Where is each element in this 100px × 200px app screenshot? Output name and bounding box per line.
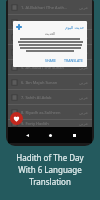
staticText: 1. Al-Bukhari (The Auth… [21,5,77,10]
staticText: عربي [79,110,89,115]
staticText: عربي [79,95,89,100]
staticText: عربي [79,35,89,40]
staticText: Translation [0,176,100,187]
staticText: عربي [79,50,89,55]
button[interactable]: Recents [69,130,79,140]
staticText: عربي [79,5,89,10]
button[interactable]: Home [45,130,55,140]
staticText: 9. Forty Hadith [21,121,77,126]
button[interactable]: 3. Abu Dawood Sunan [8,30,92,44]
staticText: TRANSLATE [64,58,83,63]
button[interactable]: 8. Riyadh as-Saliheen [8,105,92,119]
button[interactable]: 9. Forty Hadith [8,120,92,127]
button[interactable]: 4. Jami at-Tirmidhi [8,45,92,59]
staticText: Hadith of The Day [0,152,100,163]
button[interactable]: Favourites [10,112,23,125]
button[interactable]: 2. Muslim (The Hadith Primer) [8,15,92,29]
staticText: حديث اليوم [65,25,84,30]
staticText: الحديث [16,32,84,36]
button[interactable]: 7. Sahih Al-Adab [8,90,92,104]
staticText: عربي [79,121,89,126]
button[interactable]: TRANSLATE [63,57,84,64]
staticText: SHARE [45,58,56,63]
staticText: 5. An-Nasa'i The Sunan [21,65,77,70]
button[interactable]: Back [22,130,32,140]
staticText: عربي [79,65,89,70]
button[interactable]: 1. Al-Bukhari (The Auth… [8,0,92,14]
staticText: عربي [79,80,89,85]
staticText: 8. Riyadh as-Saliheen [21,110,77,115]
staticText: عربي [79,20,89,25]
staticText: 3. Abu Dawood Sunan [21,35,77,40]
staticText: 7. Sahih Al-Adab [21,95,77,100]
button[interactable]: 5. An-Nasa'i The Sunan [8,60,92,74]
button[interactable]: SHARE [44,57,57,64]
button[interactable]: 6. Ibn Majah Sunan [8,75,92,89]
staticText: 6. Ibn Majah Sunan [21,80,77,85]
staticText: 2. Muslim (The Hadith Primer) [21,20,77,25]
staticText: With 6 Language [0,164,100,175]
staticText: 4. Jami at-Tirmidhi [21,50,77,55]
